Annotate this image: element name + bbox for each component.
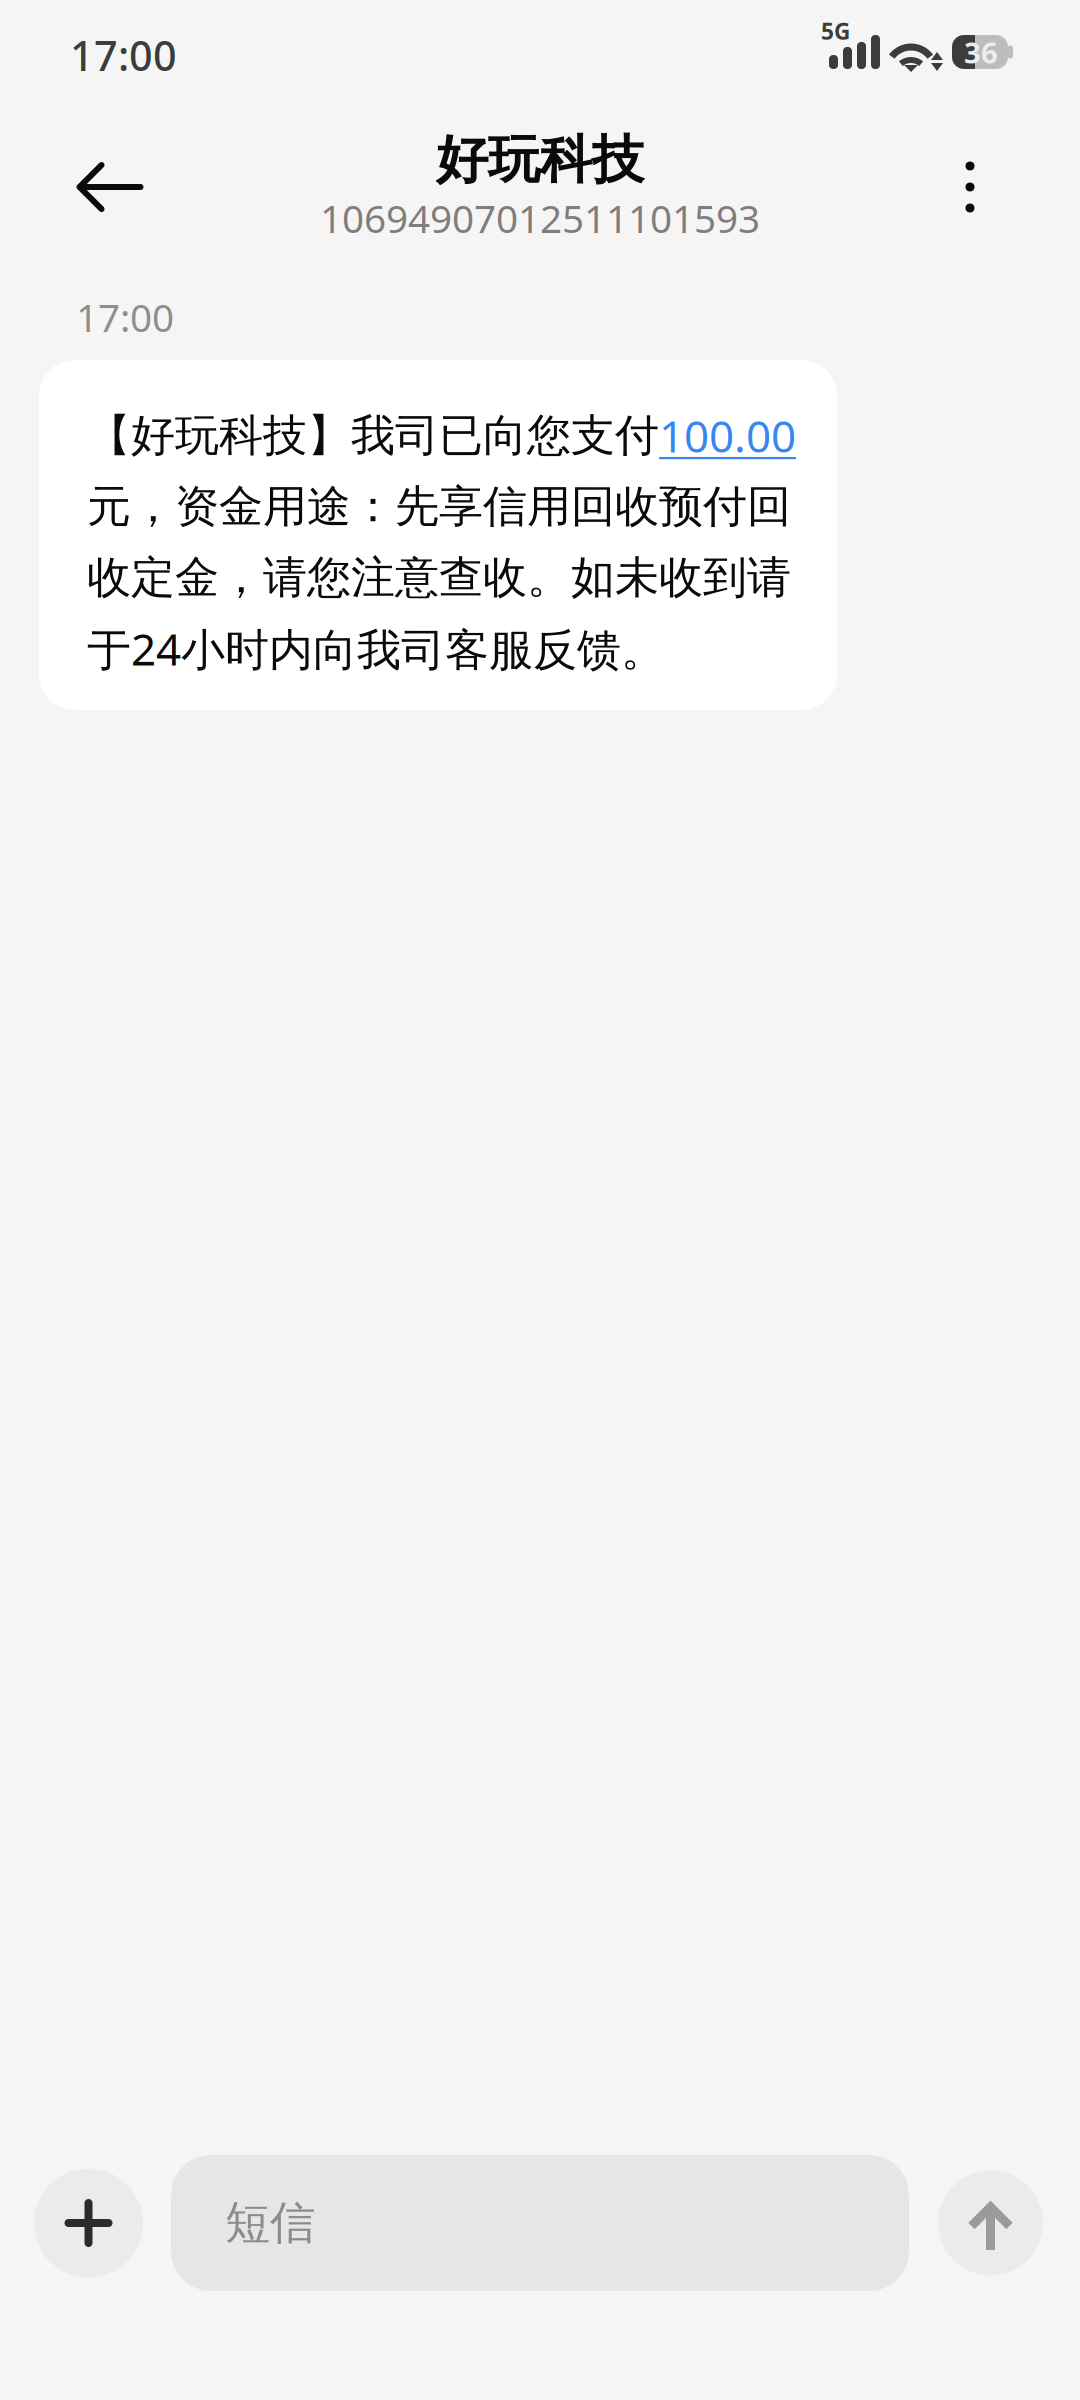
button[interactable]: 短信 <box>171 2155 909 2291</box>
button[interactable]: Back <box>40 104 180 256</box>
staticText: 100.00 <box>659 406 796 465</box>
staticText: 元，资金用途：先享信用回收预付回 <box>87 479 791 533</box>
staticText: 36 <box>964 32 998 71</box>
staticText: 5G <box>821 16 850 46</box>
staticText: 收定金，请您注意查收。如未收到请 <box>87 550 791 604</box>
staticText: 17:00 <box>76 291 174 343</box>
staticText: 好玩科技 <box>436 128 644 192</box>
staticText: 【好玩科技】我司已向您支付 <box>87 408 659 462</box>
button[interactable]: Add attachment <box>34 2168 143 2277</box>
staticText: 17:00 <box>70 28 177 82</box>
button[interactable]: More options <box>900 104 1040 256</box>
staticText: 于24小时内向我司客服反馈。 <box>87 619 665 678</box>
button[interactable]: 【好玩科技】我司已向您支付 <box>39 360 837 710</box>
staticText: 短信 <box>225 2195 315 2251</box>
staticText: 10694907012511101593 <box>320 192 760 244</box>
button[interactable]: Send <box>938 2170 1043 2275</box>
